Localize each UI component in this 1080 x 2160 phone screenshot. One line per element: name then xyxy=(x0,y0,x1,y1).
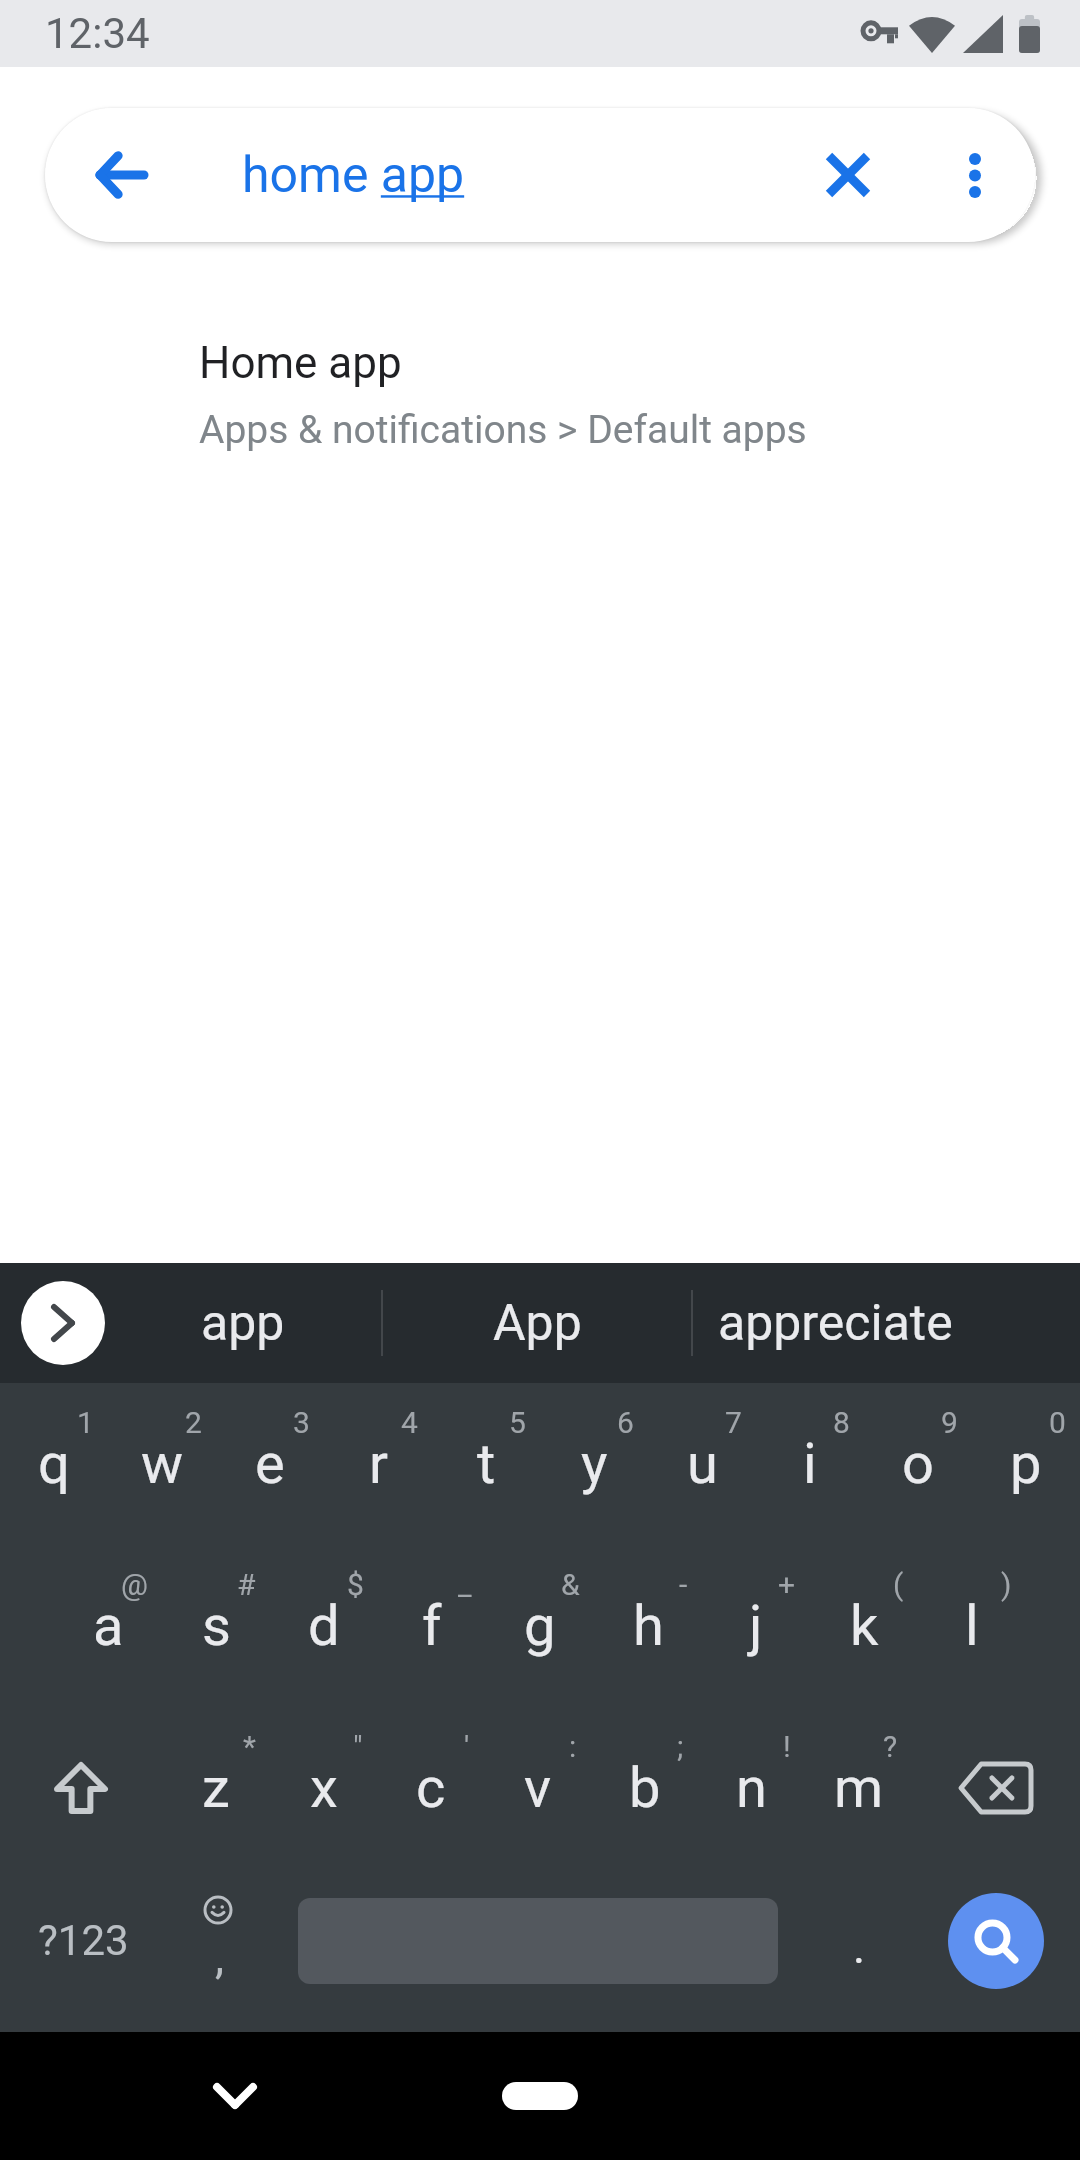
staticText: k xyxy=(850,1593,879,1659)
button[interactable]: 1 xyxy=(0,1383,108,1545)
button[interactable]: 9 xyxy=(864,1383,972,1545)
button[interactable]: 2 xyxy=(108,1383,216,1545)
staticText: home app xyxy=(242,146,465,205)
staticText: 0 xyxy=(1049,1405,1066,1440)
staticText: 6 xyxy=(617,1405,634,1440)
staticText: j xyxy=(749,1593,763,1659)
staticText: : xyxy=(569,1729,577,1764)
button[interactable]: ! xyxy=(698,1707,805,1869)
button[interactable]: # xyxy=(162,1545,270,1707)
button[interactable]: 7 xyxy=(648,1383,756,1545)
staticText: x xyxy=(310,1755,338,1821)
button[interactable]: , xyxy=(166,1859,270,2022)
button[interactable]: ? xyxy=(805,1707,912,1869)
button[interactable]: & xyxy=(486,1545,594,1707)
staticText: m xyxy=(834,1755,884,1821)
staticText: ) xyxy=(1001,1567,1012,1602)
button[interactable]: ( xyxy=(810,1545,918,1707)
staticText: u xyxy=(687,1431,718,1497)
button[interactable]: " xyxy=(270,1707,377,1869)
button[interactable] xyxy=(930,108,1020,242)
button[interactable]: Home app xyxy=(0,337,1080,453)
staticText: p xyxy=(1010,1431,1042,1497)
staticText: 3 xyxy=(293,1405,310,1440)
staticText: ?123 xyxy=(38,1916,129,1965)
button[interactable]: @ xyxy=(54,1545,162,1707)
staticText: b xyxy=(629,1755,661,1821)
staticText: 4 xyxy=(401,1405,418,1440)
staticText: z xyxy=(202,1755,230,1821)
staticText: r xyxy=(369,1431,388,1497)
staticText: - xyxy=(679,1567,688,1602)
staticText: 1 xyxy=(77,1405,94,1440)
button[interactable]: 3 xyxy=(216,1383,324,1545)
button[interactable]: ?123 xyxy=(0,1859,166,2022)
button[interactable]: ' xyxy=(377,1707,484,1869)
button[interactable]: ) xyxy=(918,1545,1026,1707)
staticText: y xyxy=(581,1431,608,1497)
staticText: t xyxy=(477,1431,496,1497)
staticText: c xyxy=(416,1755,446,1821)
button[interactable]: 5 xyxy=(432,1383,540,1545)
staticText: & xyxy=(561,1567,580,1602)
staticText: 12:34 xyxy=(45,9,150,58)
staticText: g xyxy=(524,1593,556,1659)
button[interactable] xyxy=(45,108,149,242)
button[interactable]: 6 xyxy=(540,1383,648,1545)
staticText: 8 xyxy=(833,1405,850,1440)
button[interactable]: 8 xyxy=(756,1383,864,1545)
button[interactable]: $ xyxy=(270,1545,378,1707)
staticText: _ xyxy=(458,1567,472,1602)
button[interactable] xyxy=(502,2082,578,2110)
staticText: q xyxy=(38,1431,70,1497)
button[interactable] xyxy=(0,1707,162,1869)
button[interactable]: appreciate xyxy=(693,1263,1080,1383)
staticText: . xyxy=(853,1920,866,1974)
button[interactable]: : xyxy=(484,1707,591,1869)
button[interactable] xyxy=(197,2032,273,2160)
staticText: ( xyxy=(893,1567,904,1602)
button[interactable]: + xyxy=(702,1545,810,1707)
staticText: $ xyxy=(347,1567,364,1602)
button[interactable]: . xyxy=(806,1859,912,2022)
staticText: " xyxy=(353,1729,363,1764)
staticText: 7 xyxy=(725,1405,742,1440)
staticText: appreciate xyxy=(718,1294,953,1353)
staticText: , xyxy=(215,1930,225,1984)
staticText: App xyxy=(493,1294,582,1353)
staticText: w xyxy=(141,1431,184,1497)
staticText: 2 xyxy=(185,1405,202,1440)
staticText: i xyxy=(803,1431,817,1497)
staticText: e xyxy=(255,1431,285,1497)
button[interactable] xyxy=(912,1859,1080,2022)
button[interactable]: _ xyxy=(378,1545,486,1707)
staticText: app xyxy=(201,1294,285,1353)
button[interactable] xyxy=(270,1859,806,2022)
staticText: o xyxy=(902,1431,934,1497)
staticText: n xyxy=(736,1755,767,1821)
button[interactable] xyxy=(21,1281,105,1365)
staticText: Apps & notifications > Default apps xyxy=(199,407,807,453)
staticText: 5 xyxy=(509,1405,526,1440)
button[interactable]: 4 xyxy=(324,1383,432,1545)
staticText: ' xyxy=(464,1729,470,1764)
button[interactable] xyxy=(912,1707,1080,1869)
staticText: ; xyxy=(677,1729,684,1764)
staticText: ? xyxy=(883,1729,898,1764)
staticText: a xyxy=(93,1593,124,1659)
staticText: 9 xyxy=(941,1405,958,1440)
staticText: ! xyxy=(783,1729,791,1764)
button[interactable]: * xyxy=(162,1707,270,1869)
button[interactable]: app xyxy=(105,1263,381,1383)
staticText: # xyxy=(237,1567,256,1602)
button[interactable]: ; xyxy=(591,1707,698,1869)
button[interactable] xyxy=(803,108,893,242)
staticText: s xyxy=(202,1593,231,1659)
staticText: v xyxy=(524,1755,552,1821)
button[interactable]: 0 xyxy=(972,1383,1080,1545)
staticText: Home app xyxy=(199,337,402,389)
button[interactable]: App xyxy=(383,1263,691,1383)
button[interactable]: - xyxy=(594,1545,702,1707)
staticText: d xyxy=(308,1593,340,1659)
staticText: h xyxy=(633,1593,664,1659)
